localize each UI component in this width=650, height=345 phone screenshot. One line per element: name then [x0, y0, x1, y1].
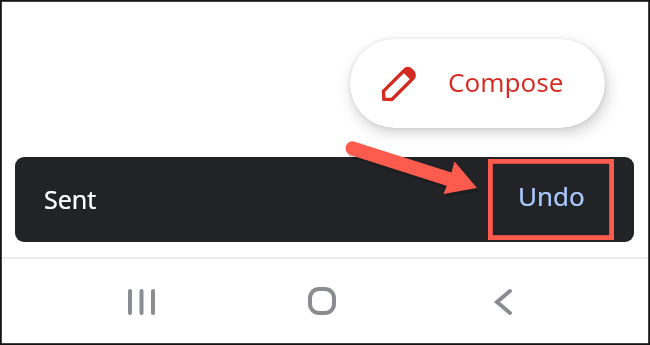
- button[interactable]: Back: [472, 271, 534, 333]
- staticText: Compose: [448, 64, 564, 99]
- staticText: Undo: [518, 178, 585, 213]
- staticText: Sent: [44, 182, 97, 216]
- button[interactable]: Undo: [488, 159, 614, 231]
- button[interactable]: Recent apps: [110, 271, 172, 333]
- button[interactable]: Compose: [350, 39, 605, 128]
- button[interactable]: Home: [291, 270, 353, 332]
